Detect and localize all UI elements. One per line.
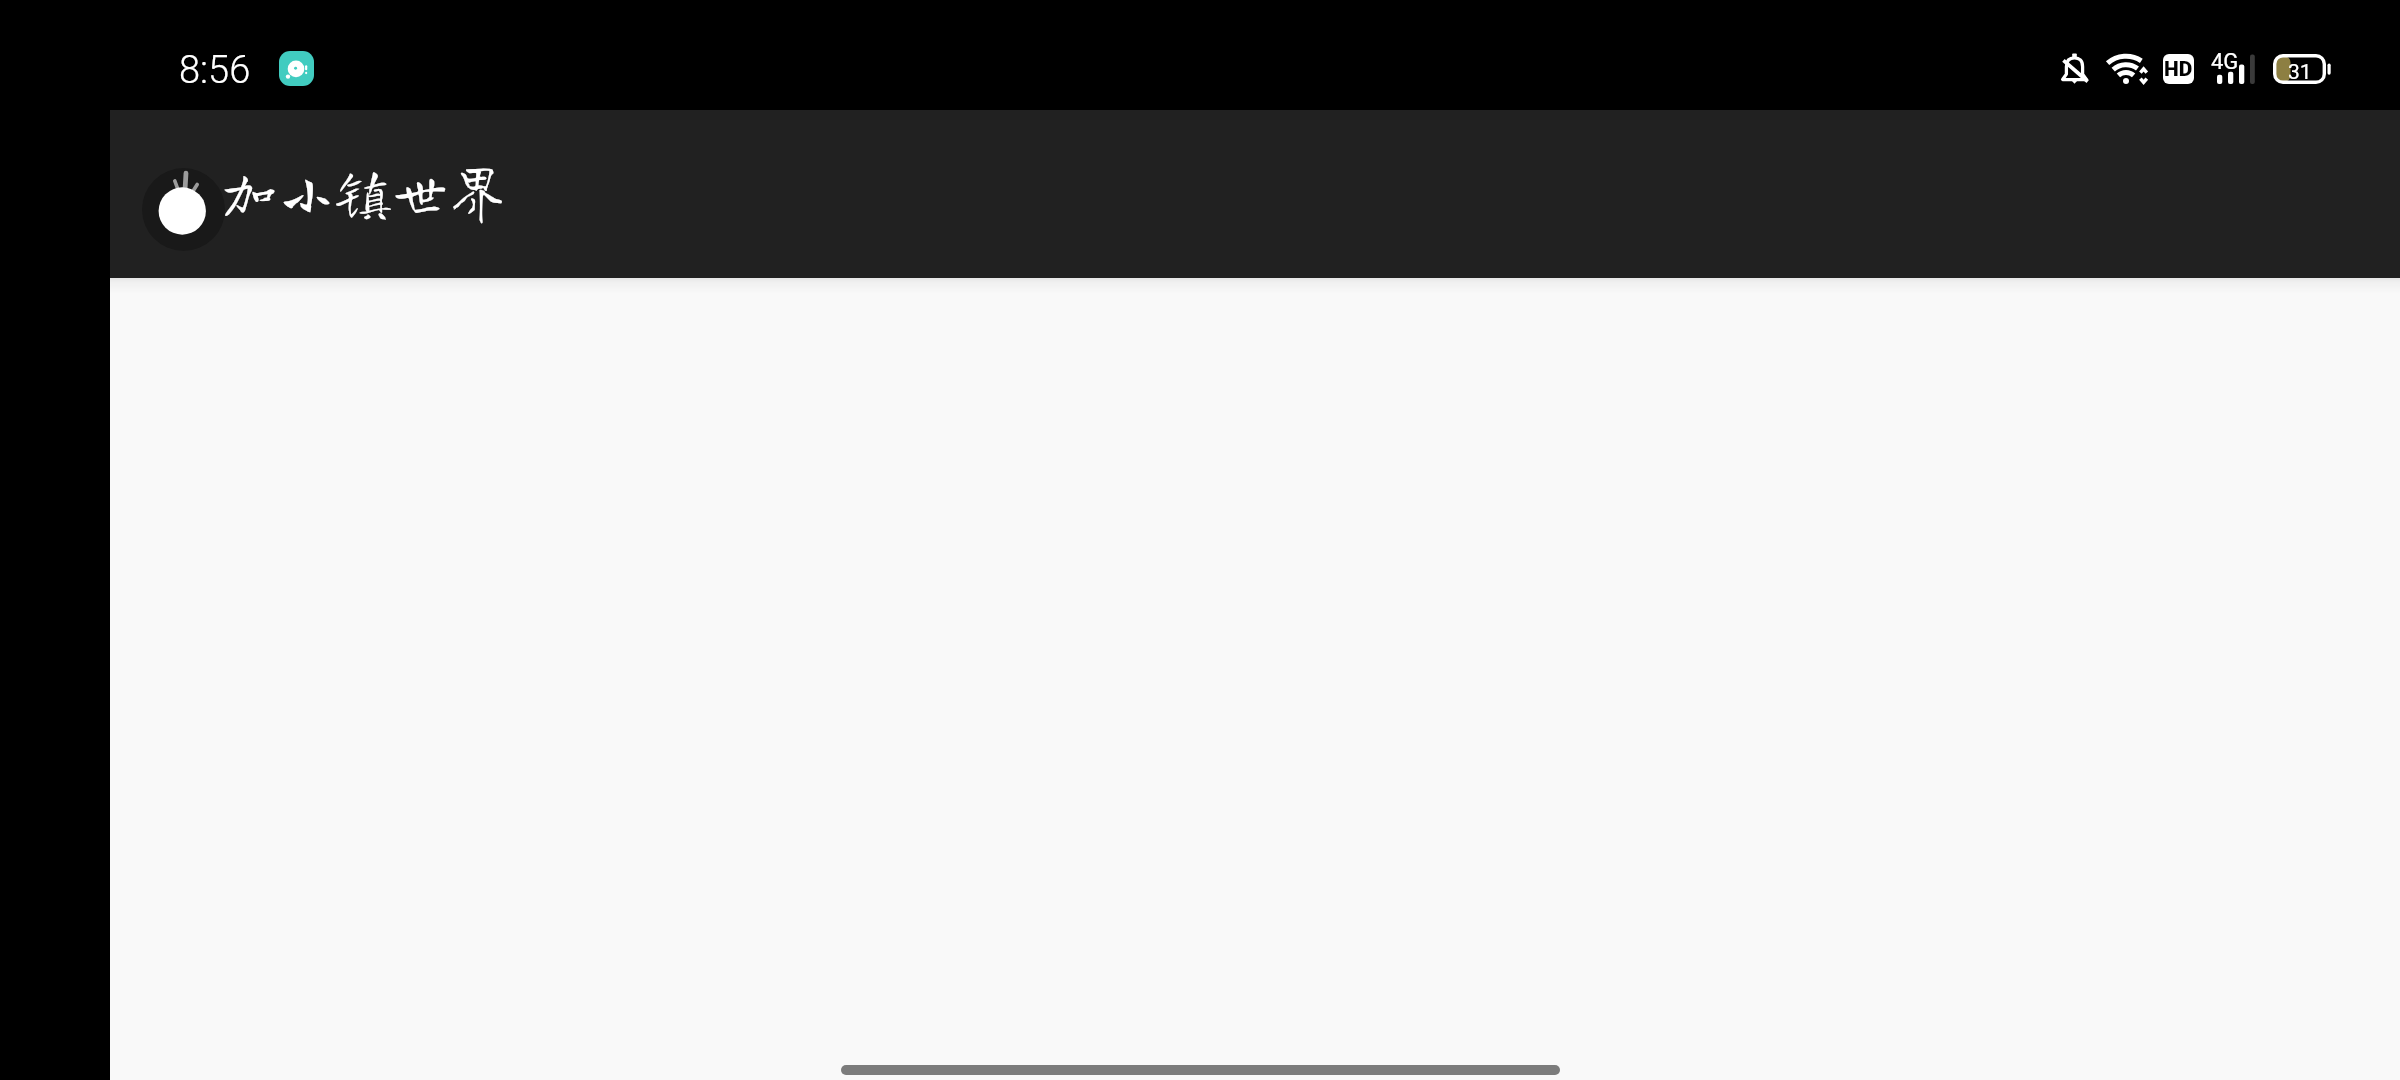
staticText: HD — [2164, 57, 2193, 82]
other: Mobile network 4G — [2210, 52, 2258, 86]
staticText: 加小镇世界 — [221, 163, 506, 220]
other: Notifications silenced — [2061, 53, 2088, 84]
other: Wi-Fi — [2106, 52, 2148, 86]
staticText: 4G — [2211, 49, 2239, 75]
button[interactable]: 加小镇世界 home — [142, 168, 510, 251]
staticText: 31 — [2288, 60, 2312, 85]
staticText: 8:56 — [179, 48, 251, 93]
